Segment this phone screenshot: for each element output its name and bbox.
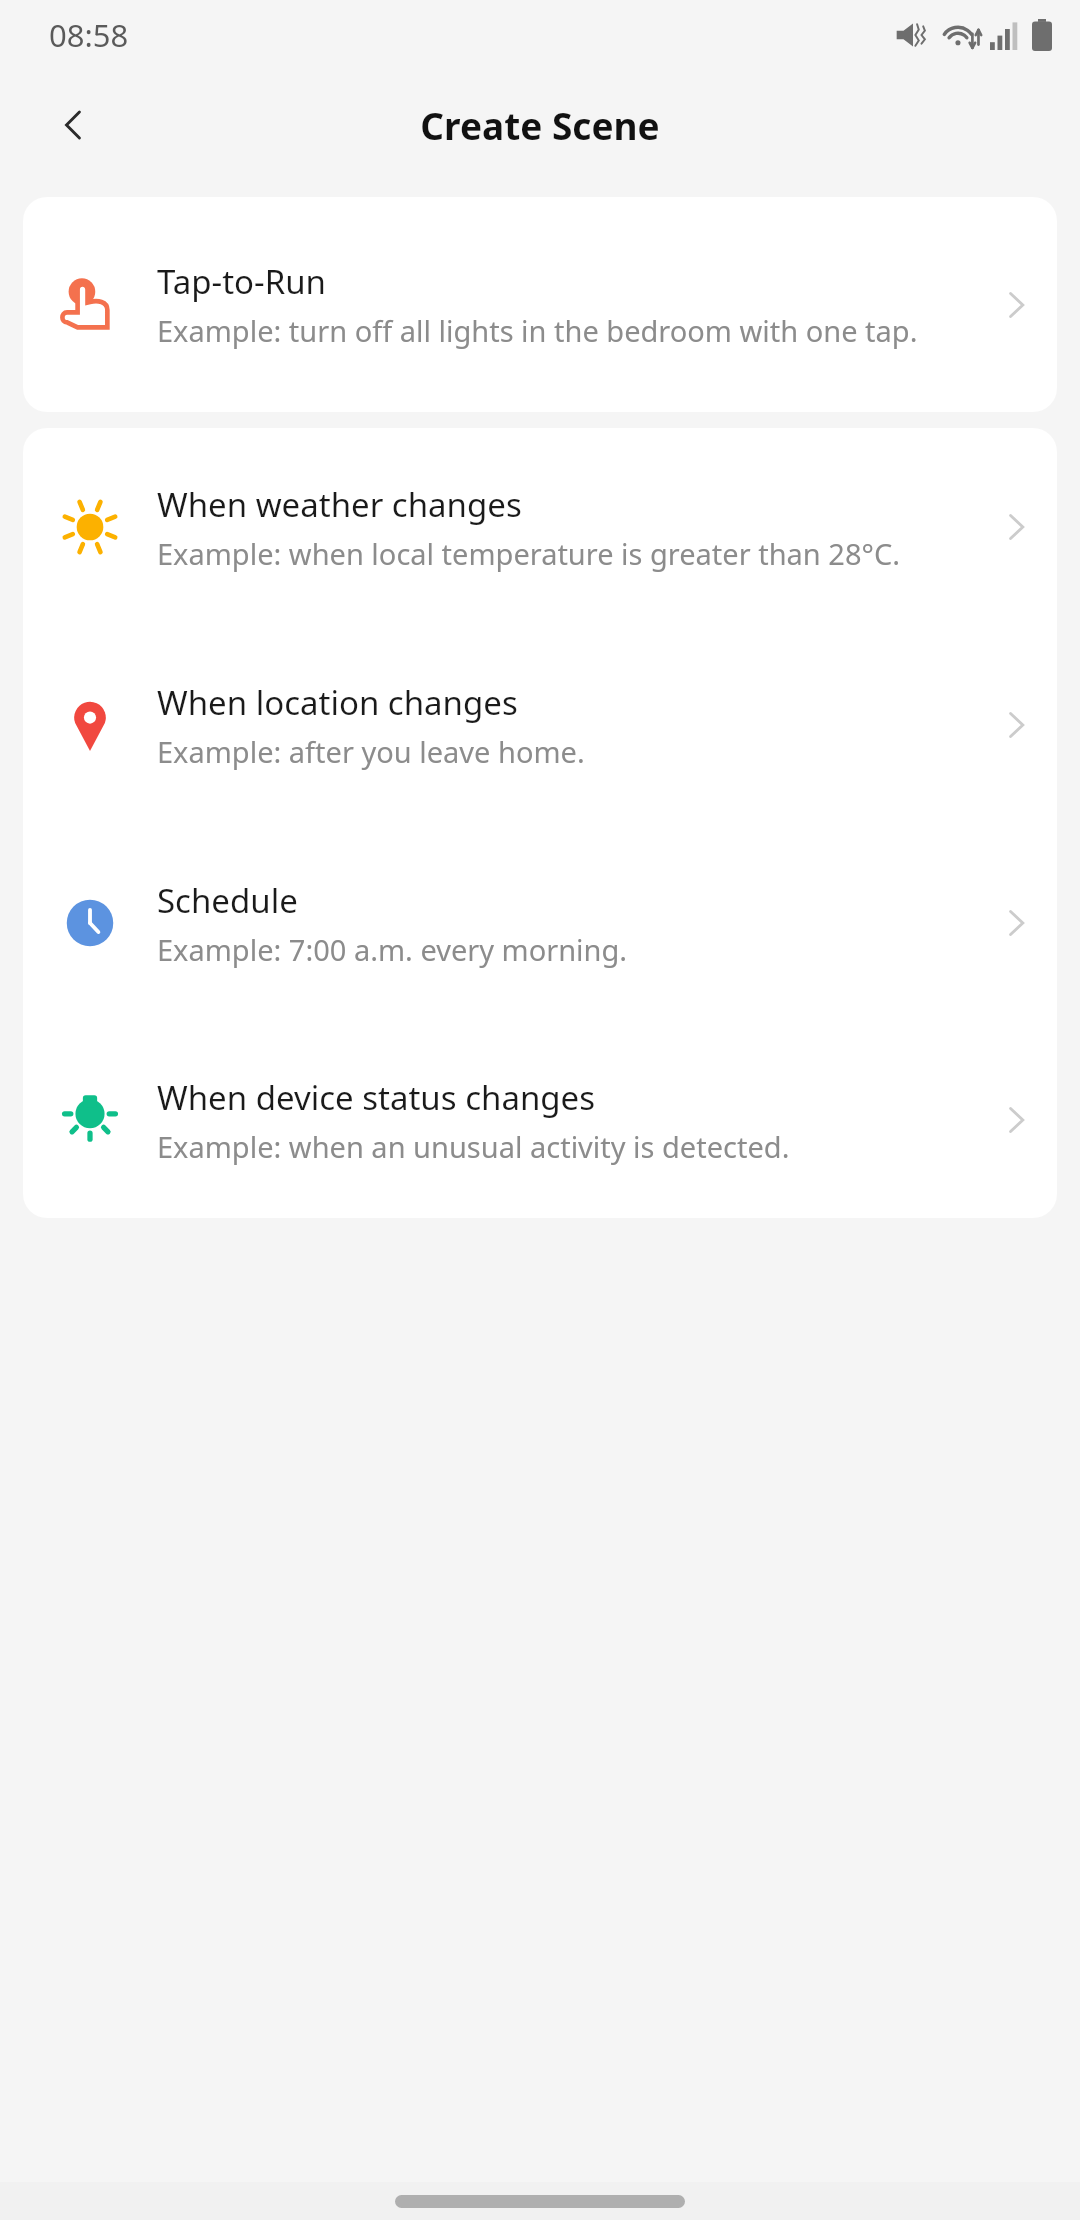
- staticText: Example: 7:00 a.m. every morning.: [157, 930, 628, 969]
- staticText: Tap-to-Run: [157, 259, 326, 304]
- staticText: Example: turn off all lights in the bedr…: [157, 311, 918, 350]
- button[interactable]: When weather changes: [23, 428, 1057, 626]
- staticText: Create Scene: [420, 100, 660, 150]
- button[interactable]: Back: [34, 85, 114, 165]
- button[interactable]: When device status changes: [23, 1022, 1057, 1218]
- staticText: When location changes: [157, 680, 518, 725]
- staticText: 08:58: [49, 14, 129, 56]
- staticText: When device status changes: [157, 1075, 596, 1120]
- staticText: Example: after you leave home.: [157, 732, 585, 771]
- staticText: When weather changes: [157, 482, 522, 527]
- button[interactable]: When location changes: [23, 626, 1057, 824]
- staticText: Schedule: [157, 878, 298, 923]
- staticText: Example: when an unusual activity is det…: [157, 1127, 790, 1166]
- button[interactable]: Tap-to-Run: [23, 197, 1057, 412]
- staticText: Example: when local temperature is great…: [157, 534, 901, 573]
- button[interactable]: Schedule: [23, 824, 1057, 1022]
